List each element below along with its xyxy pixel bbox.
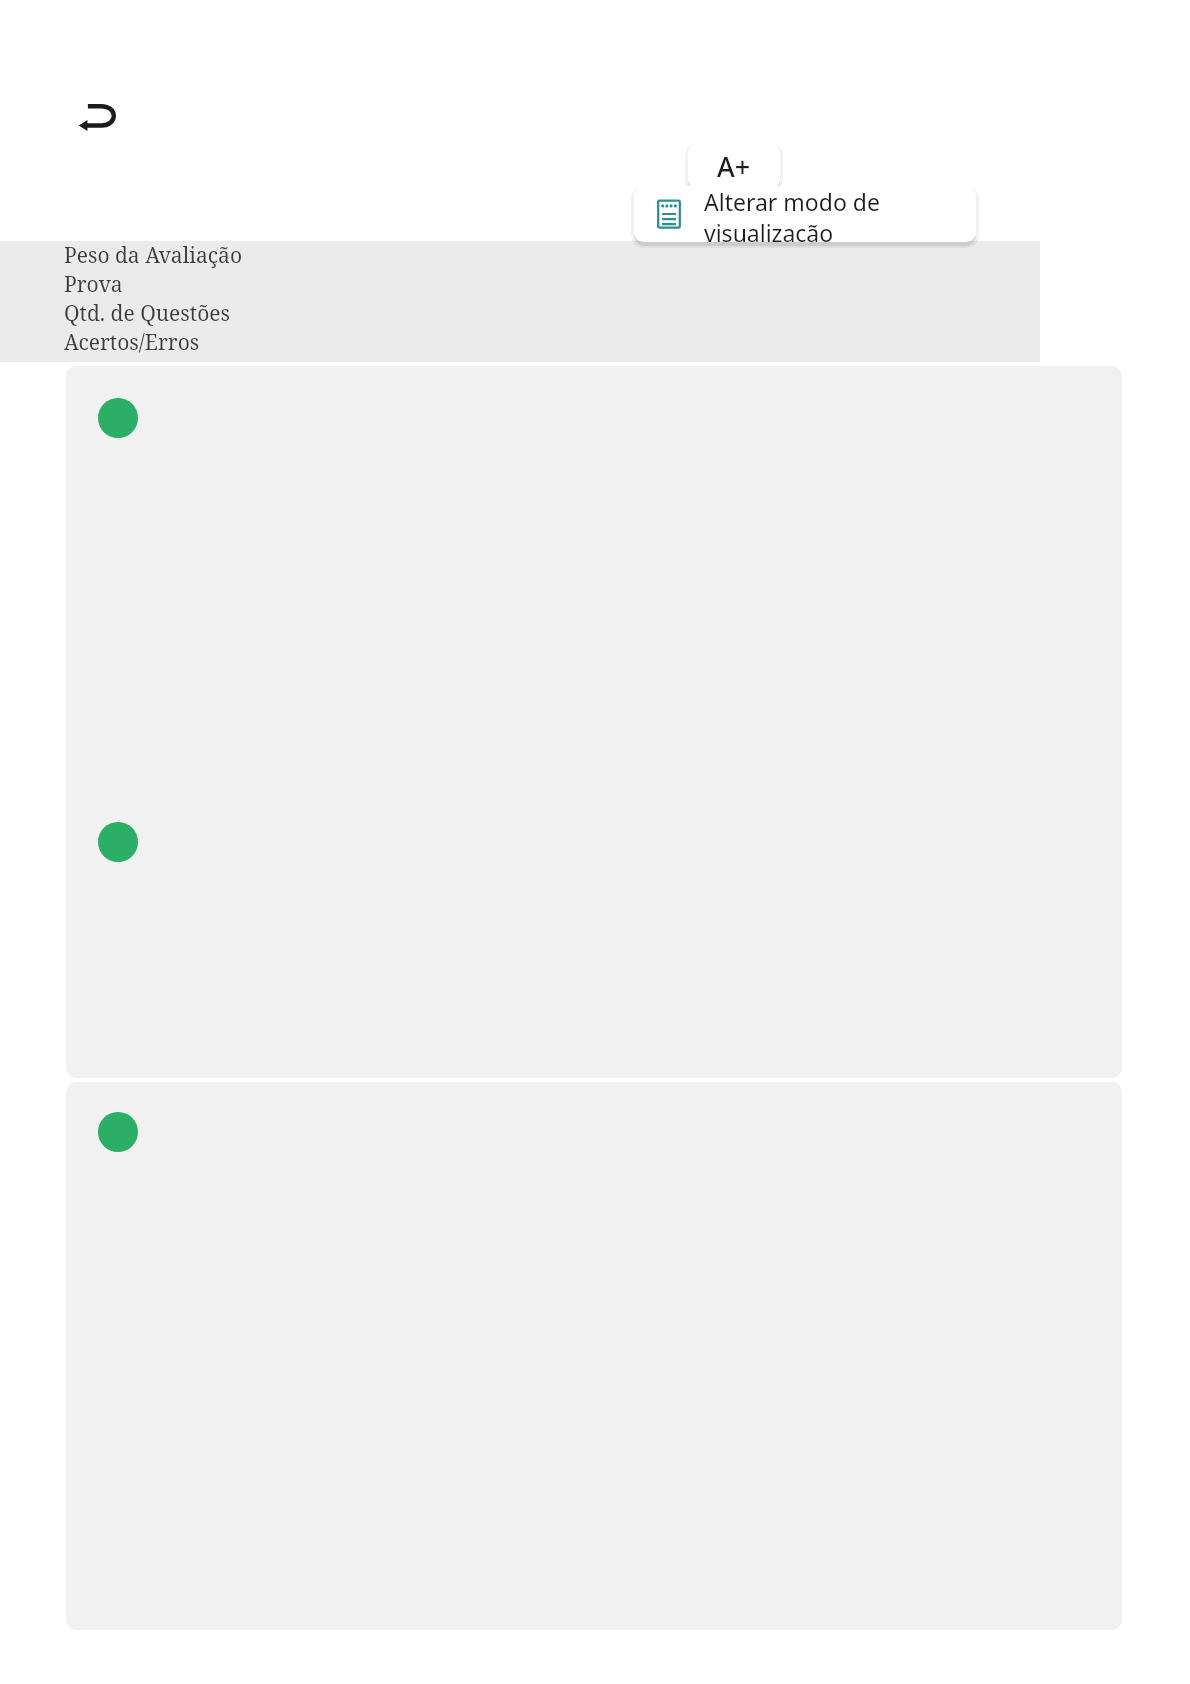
staticText: Acertos/Erros	[64, 328, 200, 357]
button[interactable]	[66, 366, 1122, 1078]
staticText: Qtd. de Questões	[64, 299, 231, 328]
staticText: Prova	[64, 270, 123, 299]
staticText: A+	[717, 148, 751, 185]
button[interactable]: A+	[688, 143, 780, 189]
button[interactable]: Alterar modo de visualização	[634, 186, 976, 242]
button[interactable]	[66, 1082, 1122, 1630]
staticText: Alterar modo de visualização	[704, 186, 960, 242]
button[interactable]: Voltar	[68, 90, 128, 150]
staticText: Peso da Avaliação	[64, 241, 242, 270]
